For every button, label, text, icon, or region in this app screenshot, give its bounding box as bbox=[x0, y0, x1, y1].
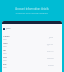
staticText: text bbox=[3, 38, 7, 41]
staticText: Denver bbox=[47, 57, 54, 60]
staticText: Jane bbox=[49, 36, 54, 39]
button[interactable]: Mail bbox=[3, 41, 61, 48]
button[interactable]: City bbox=[3, 55, 61, 62]
staticText: text bbox=[3, 66, 7, 69]
staticText: Mail bbox=[3, 42, 8, 45]
staticText: Tel bbox=[3, 49, 7, 52]
staticText: Account information details bbox=[0, 7, 64, 11]
button[interactable]: Zip bbox=[3, 62, 61, 69]
staticText: j@x.co bbox=[47, 43, 54, 46]
staticText: Name bbox=[3, 35, 10, 38]
button[interactable]: Tel bbox=[3, 48, 61, 55]
staticText: manage your profile settings bbox=[0, 11, 64, 14]
staticText: 555-12 bbox=[47, 50, 54, 53]
button[interactable]: Name bbox=[3, 34, 61, 41]
staticText: 80202 bbox=[48, 64, 54, 67]
staticText: text bbox=[3, 52, 7, 55]
staticText: Jane bbox=[6, 27, 11, 30]
staticText: Zip bbox=[3, 63, 7, 66]
staticText: text bbox=[3, 45, 7, 48]
staticText: text bbox=[3, 59, 7, 62]
staticText: City bbox=[3, 56, 8, 59]
